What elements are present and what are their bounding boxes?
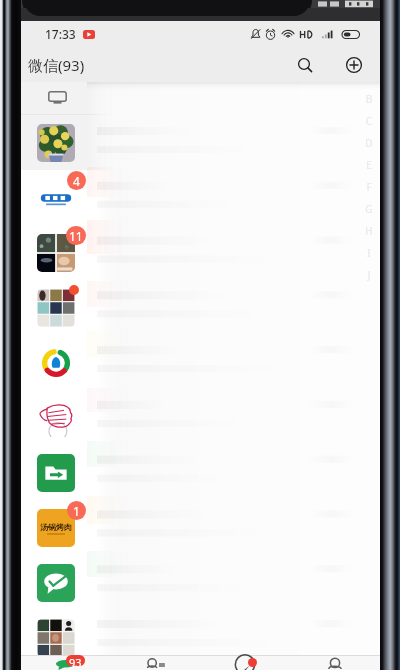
button[interactable]: Contacts xyxy=(110,656,200,670)
button[interactable] xyxy=(21,445,380,500)
button[interactable]: Add xyxy=(340,51,368,79)
staticText: 17:33 xyxy=(45,26,76,42)
button[interactable]: Chats xyxy=(21,656,110,670)
staticText: 1 xyxy=(73,503,80,519)
staticText: H xyxy=(362,224,376,238)
staticText: 汤锅烤肉 xyxy=(40,522,72,532)
staticText: D xyxy=(362,136,376,150)
staticText: E xyxy=(362,158,376,172)
staticText: J xyxy=(362,268,376,282)
button[interactable] xyxy=(21,280,380,335)
staticText: G xyxy=(362,202,376,216)
button[interactable]: Discover xyxy=(200,656,290,670)
staticText: 微信(93) xyxy=(28,55,85,75)
staticText: 11 xyxy=(69,228,83,244)
button[interactable] xyxy=(21,335,380,390)
button[interactable] xyxy=(21,555,380,610)
button[interactable]: Windows WeChat logged in xyxy=(21,82,380,115)
button[interactable]: 汤锅烤肉 xyxy=(21,500,380,555)
button[interactable]: Me xyxy=(290,656,380,670)
staticText: F xyxy=(362,180,376,194)
button[interactable]: 11 xyxy=(21,225,380,280)
staticText: 93 xyxy=(69,655,82,666)
staticText: I xyxy=(362,246,376,260)
button[interactable] xyxy=(21,390,380,445)
button[interactable] xyxy=(21,115,380,170)
staticText: C xyxy=(362,114,376,128)
staticText: 4 xyxy=(73,173,80,189)
staticText: B xyxy=(362,92,376,106)
button[interactable]: 4 xyxy=(21,170,380,225)
button[interactable] xyxy=(21,610,380,665)
button[interactable]: Search xyxy=(291,51,319,79)
